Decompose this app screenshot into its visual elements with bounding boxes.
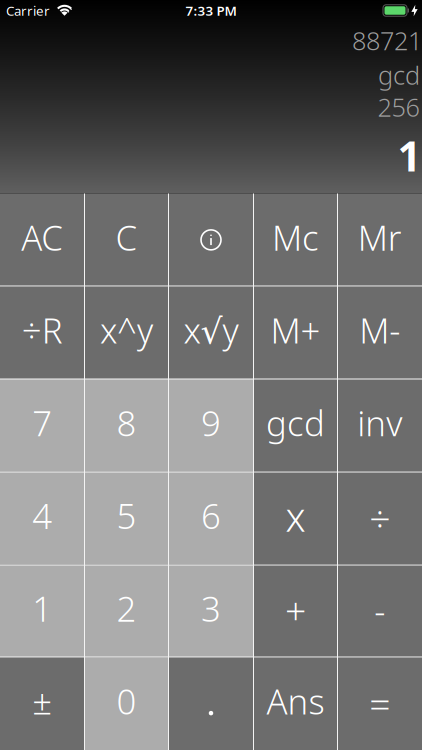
staticText: Mc — [272, 214, 319, 260]
staticText: C — [116, 214, 138, 260]
button[interactable]: M- — [338, 286, 422, 379]
staticText: 7 — [32, 400, 52, 446]
staticText: ÷ — [369, 493, 390, 543]
button[interactable]: + — [253, 564, 338, 657]
button[interactable]: 1 — [0, 564, 84, 657]
staticText: 1 — [397, 128, 421, 183]
button[interactable]: 6 — [169, 472, 253, 565]
button[interactable]: - — [338, 564, 422, 657]
staticText: ÷R — [22, 307, 63, 353]
staticText: Mr — [358, 214, 402, 260]
staticText: 7:33 PM — [185, 2, 236, 19]
staticText: 1 — [32, 585, 52, 631]
staticText: 4 — [32, 493, 52, 539]
staticText: gcd — [378, 58, 420, 92]
staticText: x^y — [100, 307, 153, 353]
button[interactable]: 9 — [169, 379, 253, 472]
staticText: 5 — [117, 493, 137, 539]
staticText: + — [285, 585, 306, 635]
button[interactable]: . — [169, 657, 253, 750]
staticText: x — [285, 490, 305, 543]
button[interactable]: Ans — [253, 657, 338, 750]
staticText: Ans — [266, 678, 324, 724]
button[interactable]: 4 — [0, 472, 84, 565]
button[interactable]: Mr — [338, 193, 422, 286]
staticText: 88721 — [352, 23, 422, 57]
button[interactable]: 7 — [0, 379, 84, 472]
staticText: 0 — [117, 678, 137, 724]
button[interactable]: Mc — [253, 193, 338, 286]
staticText: 9 — [201, 400, 221, 446]
button[interactable]: ± — [0, 657, 84, 750]
staticText: = — [369, 678, 390, 728]
button[interactable]: 5 — [84, 472, 169, 565]
staticText: 2 — [117, 585, 137, 631]
staticText: 3 — [201, 585, 221, 631]
button[interactable]: 0 — [84, 657, 169, 750]
button[interactable]: 2 — [84, 564, 169, 657]
staticText: gcd — [266, 400, 325, 446]
button[interactable]: inv — [338, 379, 422, 472]
staticText: inv — [357, 400, 402, 446]
button[interactable]: 8 — [84, 379, 169, 472]
staticText: M- — [359, 307, 400, 353]
staticText: - — [374, 588, 385, 634]
staticText: x√y — [183, 307, 238, 353]
staticText: 8 — [117, 400, 137, 446]
staticText: ± — [32, 678, 52, 724]
button[interactable]: gcd — [253, 379, 338, 472]
button[interactable]: x — [253, 472, 338, 565]
button[interactable]: ÷ — [338, 472, 422, 565]
staticText: M+ — [270, 307, 320, 353]
button[interactable]: x^y — [84, 286, 169, 379]
button[interactable]: = — [338, 657, 422, 750]
button[interactable]: 3 — [169, 564, 253, 657]
button[interactable]: Info — [169, 193, 253, 286]
button[interactable]: C — [84, 193, 169, 286]
button[interactable]: AC — [0, 193, 84, 286]
staticText: 256 — [377, 90, 419, 124]
staticText: 6 — [201, 493, 221, 539]
staticText: Carrier — [6, 2, 50, 19]
button[interactable]: M+ — [253, 286, 338, 379]
staticText: AC — [21, 214, 63, 260]
button[interactable]: x√y — [169, 286, 253, 379]
button[interactable]: ÷R — [0, 286, 84, 379]
